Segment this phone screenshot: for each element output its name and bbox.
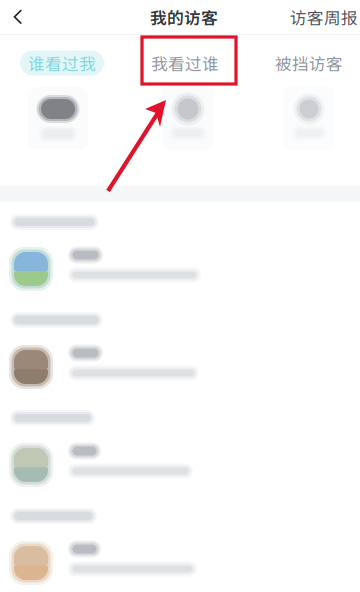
button[interactable]: Back	[0, 0, 36, 34]
staticText: 访客周报	[290, 5, 358, 29]
button[interactable]: Visitor row	[0, 428, 360, 496]
button[interactable]: Visitor	[10, 83, 106, 157]
button[interactable]: Visitor	[140, 83, 236, 157]
button[interactable]: 访客周报	[289, 0, 359, 34]
button[interactable]: Visitor row	[0, 330, 360, 398]
staticText: 被挡访客	[275, 51, 343, 75]
button[interactable]: Visitor row	[0, 526, 360, 592]
button[interactable]: Visitor	[261, 83, 357, 157]
button[interactable]: 我看过谁	[143, 50, 227, 75]
button[interactable]: 谁看过我	[20, 50, 104, 75]
staticText: 我的访客	[150, 5, 218, 29]
staticText: 谁看过我	[28, 51, 96, 75]
button[interactable]: Visitor row	[0, 232, 360, 300]
staticText: 我看过谁	[151, 51, 219, 75]
button[interactable]: 被挡访客	[267, 50, 351, 75]
